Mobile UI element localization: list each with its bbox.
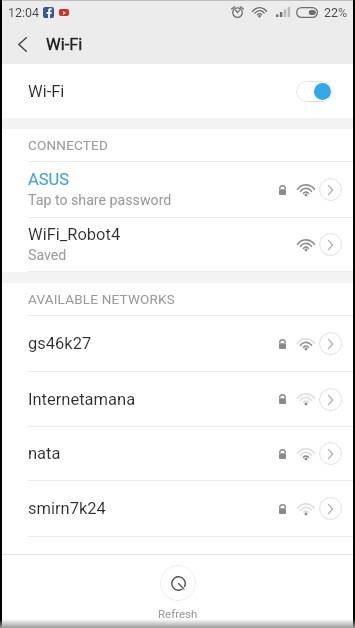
button[interactable]: Network details (319, 233, 342, 256)
button[interactable]: Network details (319, 332, 342, 355)
staticText: Tap to share password (28, 192, 172, 209)
staticText: Wi-Fi (46, 35, 83, 54)
button[interactable]: Network details (319, 178, 342, 201)
button[interactable]: Network details (319, 497, 342, 520)
button[interactable]: Refresh (146, 565, 210, 620)
button[interactable]: Back (2, 24, 42, 64)
staticText: WiFi_Robot4 (28, 225, 121, 244)
staticText: 12:04 (8, 5, 40, 20)
staticText: Wi-Fi (28, 82, 65, 101)
button[interactable]: nata (2, 427, 353, 480)
button[interactable]: Internetamana (2, 372, 353, 426)
button[interactable]: Network details (319, 442, 342, 465)
staticText: AVAILABLE NETWORKS (28, 291, 175, 307)
staticText: Refresh (158, 607, 198, 620)
staticText: Internetamana (28, 390, 136, 409)
button[interactable]: ASUS (2, 162, 353, 217)
button[interactable]: WiFi_Robot4 (2, 218, 353, 271)
button[interactable]: gs46k27 (2, 316, 353, 371)
staticText: smirn7k24 (28, 499, 106, 518)
staticText: gs46k27 (28, 334, 92, 353)
staticText: 22% (324, 5, 348, 20)
staticText: Saved (28, 247, 67, 264)
button[interactable]: Wi-Fi (2, 64, 353, 118)
button[interactable]: Network details (319, 388, 342, 411)
button[interactable]: smirn7k24 (2, 481, 353, 536)
staticText: nata (28, 444, 61, 463)
staticText: ASUS (28, 170, 70, 189)
staticText: CONNECTED (28, 137, 108, 153)
